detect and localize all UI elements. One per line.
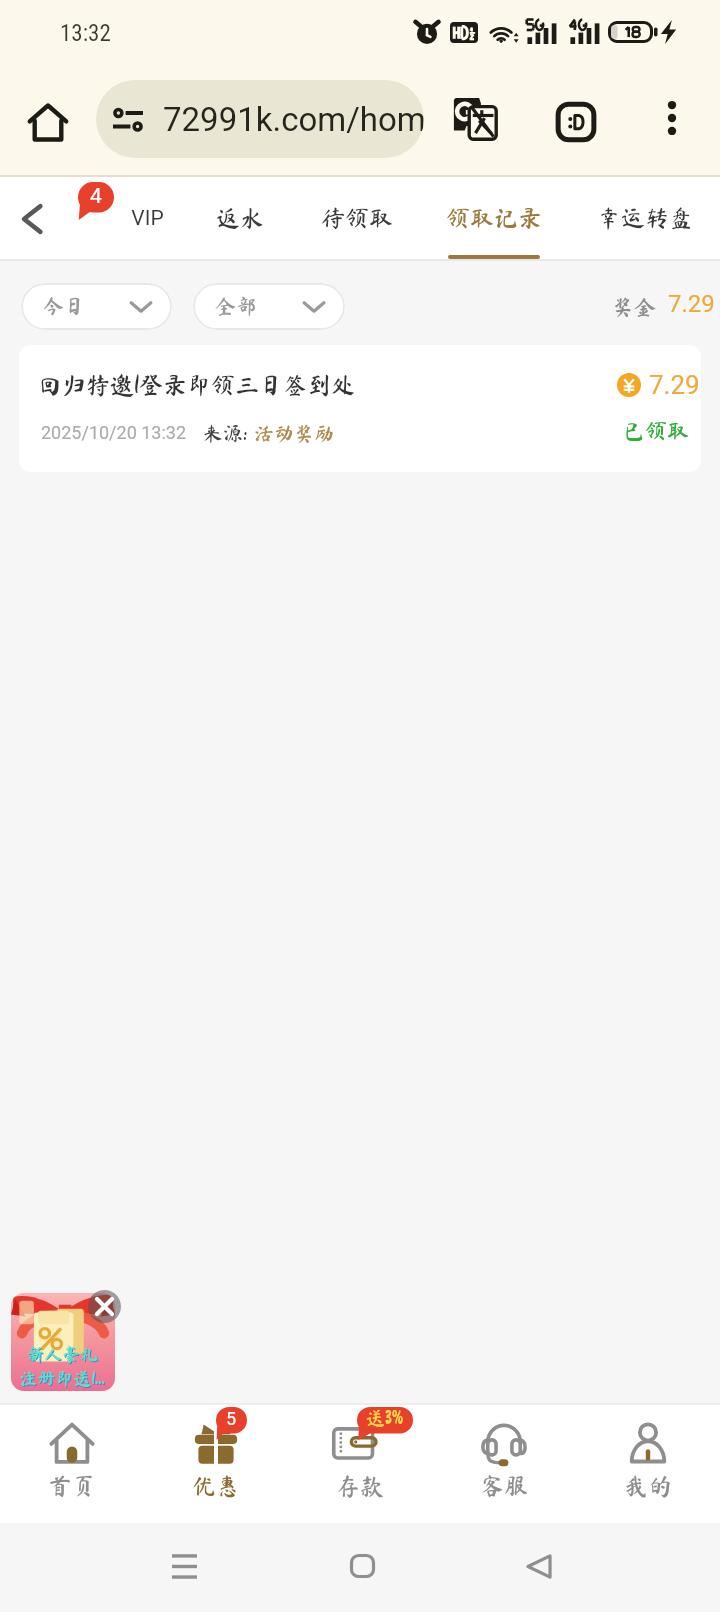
button[interactable]: 首页 <box>0 1403 144 1498</box>
button[interactable]: More options <box>646 92 698 144</box>
staticText: VIP <box>131 206 164 231</box>
staticText: 7.29 <box>668 290 715 318</box>
staticText: 待领取 <box>321 206 393 230</box>
staticText: 客服 <box>480 1474 528 1498</box>
button[interactable]: New user promotion <box>11 1293 115 1391</box>
button[interactable]: Switch tabs <box>546 92 606 152</box>
staticText: 存款 <box>336 1474 384 1498</box>
button[interactable]: 返水 <box>170 177 310 261</box>
staticText: 送3% <box>366 1408 404 1427</box>
button[interactable]: 全部 <box>193 283 345 330</box>
button[interactable]: 回归特邀1登录即领三日签到处 <box>19 345 701 472</box>
staticText: 全部 <box>215 296 257 317</box>
staticText: 13:32 <box>60 20 111 47</box>
staticText: 奖金 <box>612 296 657 318</box>
staticText: 返水 <box>216 206 264 230</box>
staticText: 领取记录 <box>446 206 542 230</box>
button[interactable]: 我的 <box>576 1403 720 1498</box>
staticText: 今日 <box>43 296 85 317</box>
button[interactable]: Close ad <box>88 1290 121 1323</box>
button[interactable]: Home <box>22 96 74 148</box>
staticText: 来源: <box>203 423 248 443</box>
staticText: 新人豪礼 注册即送1… <box>19 1345 105 1387</box>
button[interactable]: 领取记录 <box>424 177 564 261</box>
button[interactable]: Recent apps <box>154 1536 214 1596</box>
staticText: 回归特邀1登录即领三日签到处 <box>38 373 355 397</box>
button[interactable]: Back <box>12 199 52 239</box>
button[interactable]: 待领取 <box>287 177 427 261</box>
button[interactable]: Translate page <box>444 88 506 150</box>
staticText: 2025/10/20 13:32 <box>41 422 187 443</box>
staticText: 首页 <box>48 1474 96 1498</box>
staticText: 72991k.com/home <box>163 100 424 139</box>
staticText: 幸运转盘 <box>597 206 693 230</box>
button[interactable]: Back <box>509 1536 569 1596</box>
button[interactable]: 幸运转盘 <box>575 177 715 261</box>
button[interactable]: 5 <box>144 1403 288 1498</box>
staticText: 我的 <box>624 1474 672 1498</box>
button[interactable]: 送3% <box>288 1403 432 1498</box>
staticText: 新人豪礼 注册即送1… <box>20 1346 106 1388</box>
staticText: 活动奖励 <box>254 423 334 443</box>
button[interactable]: Home <box>332 1536 392 1596</box>
button[interactable]: 今日 <box>21 283 172 330</box>
staticText: 4 <box>90 184 102 209</box>
button[interactable]: 72991k.com/home <box>96 80 424 158</box>
staticText: 已领取 <box>623 420 690 442</box>
staticText: 7.29 <box>649 370 700 400</box>
button[interactable]: 客服 <box>432 1403 576 1498</box>
button[interactable]: VIP <box>77 177 217 261</box>
staticText: 5 <box>226 1408 237 1429</box>
staticText: 优惠 <box>192 1474 240 1498</box>
